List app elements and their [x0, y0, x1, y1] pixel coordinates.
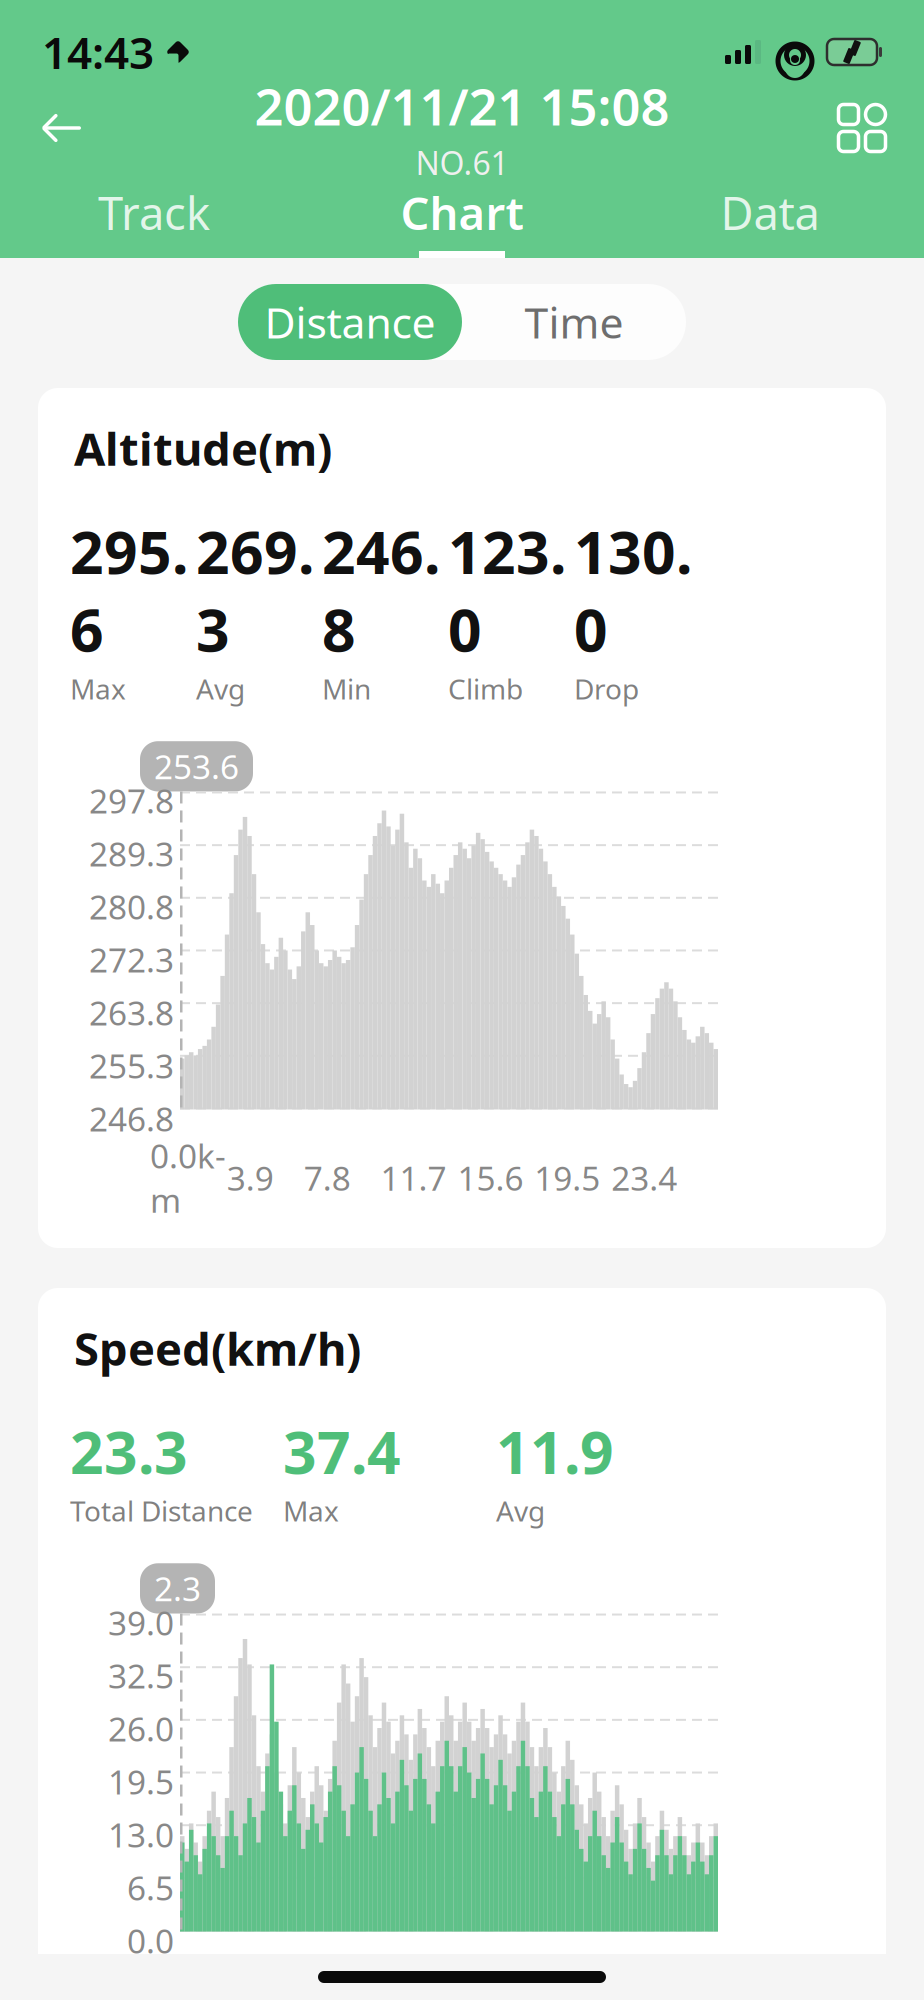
staticText: 19.5: [534, 1156, 600, 1200]
staticText: 13.0: [108, 1812, 174, 1857]
staticText: 297.8: [89, 778, 174, 823]
staticText: 269.3: [196, 512, 314, 668]
staticText: Time: [524, 294, 623, 350]
staticText: Data: [720, 182, 819, 243]
staticText: 2.3: [154, 1566, 201, 1611]
staticText: 7.8: [304, 1978, 351, 2000]
button[interactable]: Distance: [238, 284, 462, 360]
button[interactable]: Track: [0, 174, 308, 258]
staticText: 253.6: [154, 744, 239, 788]
button[interactable]: Back: [26, 98, 98, 158]
staticText: 0.0km: [150, 1133, 226, 1222]
staticText: Drop: [574, 670, 639, 707]
staticText: 295.6: [70, 512, 188, 668]
staticText: 6.5: [127, 1865, 174, 1910]
button[interactable]: More options: [826, 98, 898, 158]
staticText: Chart: [400, 182, 523, 243]
staticText: 246.8: [89, 1096, 174, 1141]
staticText: 7.8: [304, 1156, 351, 1200]
staticText: Speed(km/h): [74, 1318, 361, 1378]
staticText: 14:43: [42, 23, 154, 81]
staticText: Min: [322, 670, 371, 707]
staticText: Altitude(m): [74, 418, 332, 478]
staticText: Distance: [264, 294, 435, 350]
button[interactable]: Time: [462, 284, 686, 360]
staticText: Avg: [196, 670, 245, 707]
staticText: 15.6: [457, 1978, 523, 2000]
staticText: Max: [70, 670, 126, 707]
staticText: 37.4: [283, 1412, 401, 1490]
staticText: 23.4: [611, 1156, 677, 1200]
staticText: 15.6: [457, 1156, 523, 1200]
staticText: 39.0: [108, 1600, 174, 1645]
button[interactable]: Chart: [308, 174, 616, 258]
staticText: Avg: [496, 1492, 545, 1529]
staticText: 263.8: [89, 990, 174, 1035]
staticText: 255.3: [89, 1043, 174, 1088]
staticText: 280.8: [89, 884, 174, 929]
staticText: 19.5: [108, 1759, 174, 1804]
staticText: 246.8: [322, 512, 440, 668]
staticText: 11.9: [496, 1412, 614, 1490]
staticText: Climb: [448, 670, 523, 707]
staticText: Total Distance: [70, 1492, 253, 1529]
staticText: Track: [98, 182, 210, 243]
staticText: 11.7: [381, 1978, 447, 2000]
staticText: Max: [283, 1492, 339, 1529]
staticText: 0.0: [127, 1918, 174, 1963]
staticText: 26.0: [108, 1706, 174, 1751]
staticText: 289.3: [89, 831, 174, 876]
button[interactable]: Data: [616, 174, 924, 258]
staticText: 32.5: [108, 1653, 174, 1698]
staticText: 3.9: [227, 1156, 274, 1200]
staticText: 23.3: [70, 1412, 188, 1490]
staticText: 11.7: [381, 1156, 447, 1200]
staticText: 123.0: [448, 512, 566, 668]
staticText: 272.3: [89, 937, 174, 982]
staticText: 19.5: [534, 1978, 600, 2000]
staticText: 130.0: [574, 512, 692, 668]
staticText: 2020/11/21 15:08: [254, 72, 669, 139]
staticText: NO.61: [415, 141, 508, 184]
